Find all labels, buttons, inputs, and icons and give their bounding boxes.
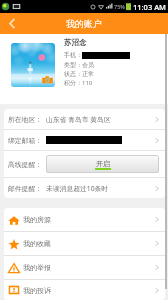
staticText: 所在地区： xyxy=(8,115,42,124)
staticText: 积分：110 xyxy=(64,79,93,87)
staticText: 山东省 青岛市 黄岛区 xyxy=(46,115,111,124)
button[interactable]: 所在地区： xyxy=(4,109,165,129)
staticText: 状态：正常 xyxy=(64,70,94,78)
button[interactable]: 绑定邮箱： xyxy=(4,130,165,150)
button[interactable]: 我的举报 xyxy=(4,256,165,279)
staticText: 苏沼念 xyxy=(64,38,87,47)
staticText: 绑定邮箱： xyxy=(8,136,42,145)
staticText: 开启 xyxy=(96,159,110,168)
button[interactable]: 开启 xyxy=(46,155,159,173)
staticText: 我的投诉 xyxy=(23,286,51,295)
staticText: 未读消息超过10条时 xyxy=(46,184,109,193)
button[interactable]: 我的投诉 xyxy=(4,280,165,300)
button[interactable]: 邮件提醒： xyxy=(4,178,165,198)
staticText: 邮件提醒： xyxy=(8,184,42,193)
staticText: 类型：会员 xyxy=(64,61,94,69)
staticText: 我的账户 xyxy=(66,18,102,29)
staticText: 高线提醒： xyxy=(8,160,42,169)
button[interactable]: 我的收藏 xyxy=(4,232,165,255)
staticText: 我的收藏 xyxy=(23,239,51,248)
button[interactable]: Change avatar xyxy=(8,40,58,90)
staticText: 我的举报 xyxy=(23,263,51,272)
staticText: 手机： xyxy=(64,51,82,59)
staticText: 11:03 AM xyxy=(133,2,166,12)
staticText: 我的房源 xyxy=(23,215,51,224)
button[interactable]: 我的房源 xyxy=(4,208,165,231)
button[interactable]: Back xyxy=(0,13,23,34)
staticText: 75% xyxy=(114,3,125,10)
